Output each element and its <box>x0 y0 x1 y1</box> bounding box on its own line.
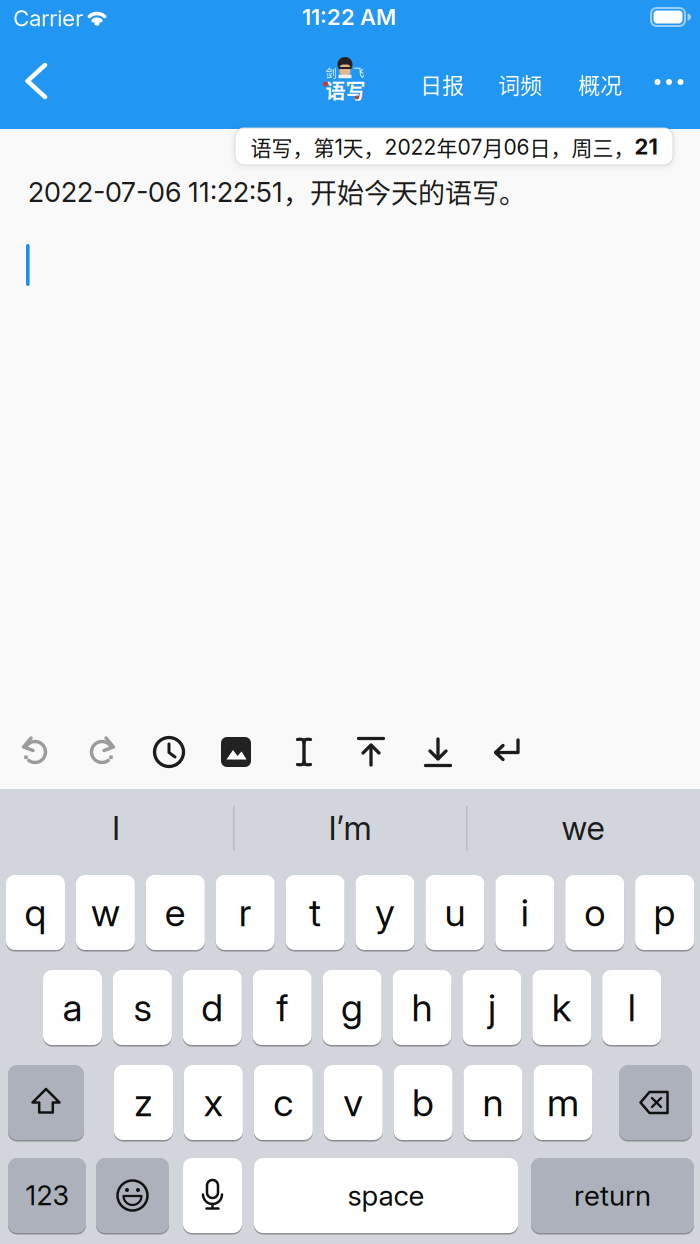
button[interactable] <box>351 732 391 772</box>
button[interactable]: s <box>113 968 172 1046</box>
button[interactable]: return <box>531 1156 694 1234</box>
staticText: n <box>482 1079 503 1125</box>
button[interactable]: x <box>184 1063 243 1141</box>
button[interactable]: r <box>216 873 275 951</box>
button[interactable]: f <box>253 968 312 1046</box>
button[interactable]: v <box>324 1063 383 1141</box>
staticText: r <box>239 889 252 935</box>
staticText: return <box>574 1179 651 1212</box>
button[interactable]: l <box>602 968 661 1046</box>
button[interactable] <box>216 732 256 772</box>
staticText: w <box>91 889 120 935</box>
staticText: a <box>62 984 82 1030</box>
staticText: g <box>341 984 363 1030</box>
staticText: z <box>134 1079 153 1125</box>
button[interactable] <box>149 732 189 772</box>
button[interactable]: i <box>495 873 554 951</box>
button[interactable]: h <box>392 968 451 1046</box>
button[interactable]: k <box>532 968 591 1046</box>
staticText: f <box>276 984 288 1030</box>
button[interactable]: I <box>16 798 216 858</box>
staticText: 11:22 AM <box>302 4 396 30</box>
button[interactable]: c <box>254 1063 313 1141</box>
staticText: 概况 <box>578 68 622 100</box>
staticText: I <box>112 808 120 848</box>
button[interactable]: y <box>355 873 414 951</box>
staticText: i <box>521 889 529 935</box>
button[interactable] <box>649 67 689 97</box>
button[interactable]: 词频 <box>498 68 542 100</box>
button[interactable] <box>183 1156 242 1234</box>
staticText: Carrier <box>13 5 83 32</box>
staticText: space <box>347 1179 424 1212</box>
button[interactable] <box>8 1063 84 1141</box>
staticText: 2022-07-06 11:22:51，开始今天的语写。 <box>28 172 526 211</box>
staticText: q <box>24 889 46 935</box>
button[interactable]: a <box>43 968 102 1046</box>
button[interactable]: m <box>533 1063 592 1141</box>
staticText: j <box>488 984 496 1030</box>
staticText: c <box>273 1079 293 1125</box>
button[interactable]: I’m <box>250 798 450 858</box>
button[interactable]: o <box>565 873 624 951</box>
button[interactable] <box>486 732 526 772</box>
button[interactable]: space <box>254 1156 518 1234</box>
staticText: we <box>561 808 604 848</box>
button[interactable]: e <box>146 873 205 951</box>
staticText: u <box>444 889 465 935</box>
button[interactable] <box>418 732 458 772</box>
button[interactable] <box>16 61 56 101</box>
staticText: 21 <box>634 133 657 160</box>
staticText: s <box>133 984 151 1030</box>
button[interactable] <box>619 1063 692 1141</box>
button[interactable] <box>96 1156 169 1234</box>
button[interactable]: p <box>635 873 694 951</box>
staticText: e <box>165 889 186 935</box>
staticText: t <box>309 889 321 935</box>
staticText: v <box>343 1079 363 1125</box>
staticText: h <box>411 984 432 1030</box>
staticText: 飞 <box>353 64 364 80</box>
button[interactable]: j <box>462 968 521 1046</box>
button[interactable]: n <box>463 1063 522 1141</box>
staticText: 日报 <box>420 68 464 100</box>
button[interactable]: 概况 <box>578 68 622 100</box>
staticText: o <box>584 889 605 935</box>
staticText: 词频 <box>498 68 542 100</box>
button[interactable]: u <box>425 873 484 951</box>
staticText: b <box>412 1079 434 1125</box>
staticText: x <box>203 1079 223 1125</box>
staticText: 语写，第1天，2022年07月06日，周三， <box>250 131 634 162</box>
staticText: p <box>654 889 676 935</box>
button[interactable]: g <box>323 968 382 1046</box>
staticText: 剑 <box>325 65 336 81</box>
button[interactable] <box>82 732 122 772</box>
button[interactable]: t <box>286 873 345 951</box>
button[interactable]: we <box>483 798 683 858</box>
staticText: 123 <box>25 1179 68 1212</box>
button[interactable]: d <box>183 968 242 1046</box>
button[interactable] <box>284 732 324 772</box>
staticText: 语写 <box>325 75 365 104</box>
staticText: I’m <box>328 808 371 848</box>
button[interactable] <box>15 732 55 772</box>
button[interactable]: q <box>6 873 65 951</box>
staticText: l <box>628 984 636 1030</box>
staticText: k <box>552 984 572 1030</box>
button[interactable]: 123 <box>8 1156 86 1234</box>
staticText: m <box>547 1079 579 1125</box>
staticText: d <box>201 984 223 1030</box>
staticText: y <box>375 889 395 935</box>
button[interactable]: b <box>394 1063 453 1141</box>
button[interactable]: z <box>114 1063 173 1141</box>
button[interactable]: 剑 <box>321 55 369 101</box>
button[interactable]: 日报 <box>420 68 464 100</box>
button[interactable]: w <box>76 873 135 951</box>
